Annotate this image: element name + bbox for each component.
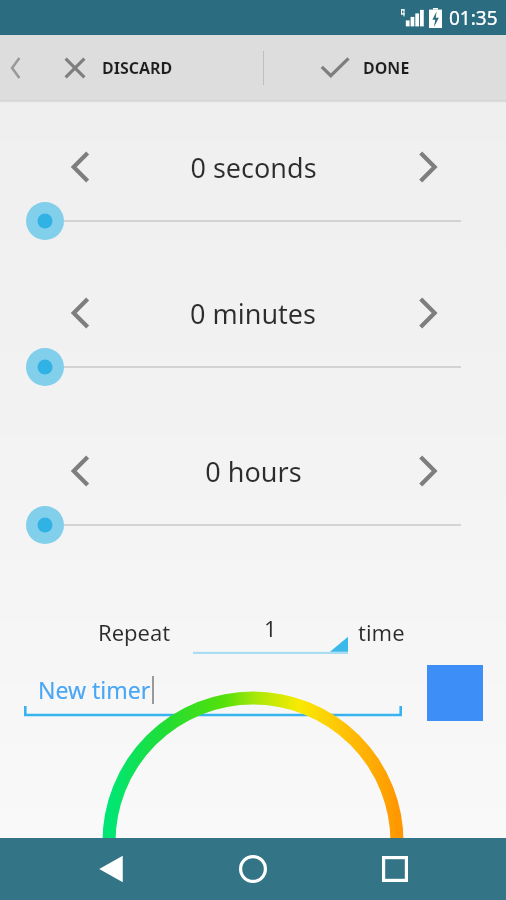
staticText: 0 hours — [205, 453, 302, 490]
button[interactable]: Back — [80, 838, 142, 900]
staticText: 0 seconds — [190, 149, 317, 186]
button[interactable]: 0 seconds — [133, 143, 373, 191]
button[interactable]: Navigate up — [4, 48, 26, 88]
staticText: New timer — [38, 674, 151, 705]
button[interactable]: Decrease 0 seconds — [56, 143, 104, 191]
button[interactable]: 1 — [193, 610, 348, 654]
staticText: DONE — [363, 57, 410, 79]
button[interactable]: Home — [222, 838, 284, 900]
button[interactable] — [0, 199, 506, 243]
button[interactable]: 0 minutes — [133, 289, 373, 337]
button[interactable]: 0 hours — [133, 447, 373, 495]
button[interactable] — [0, 503, 506, 547]
button[interactable] — [0, 345, 506, 389]
staticText: 01:35 — [449, 5, 498, 31]
button[interactable]: Increase 0 hours — [403, 447, 451, 495]
staticText: 0 minutes — [190, 295, 316, 332]
button[interactable]: Decrease 0 minutes — [56, 289, 104, 337]
button[interactable]: DONE — [320, 35, 410, 100]
staticText: time — [358, 617, 405, 647]
button[interactable]: Increase 0 minutes — [403, 289, 451, 337]
staticText: 1 — [264, 613, 277, 643]
button[interactable]: New timer — [24, 665, 402, 721]
button[interactable]: Increase 0 seconds — [403, 143, 451, 191]
staticText: Repeat — [98, 617, 171, 647]
button[interactable]: Recent apps — [364, 838, 426, 900]
button[interactable]: DISCARD — [62, 35, 173, 100]
button[interactable]: Decrease 0 hours — [56, 447, 104, 495]
staticText: DISCARD — [102, 57, 173, 79]
